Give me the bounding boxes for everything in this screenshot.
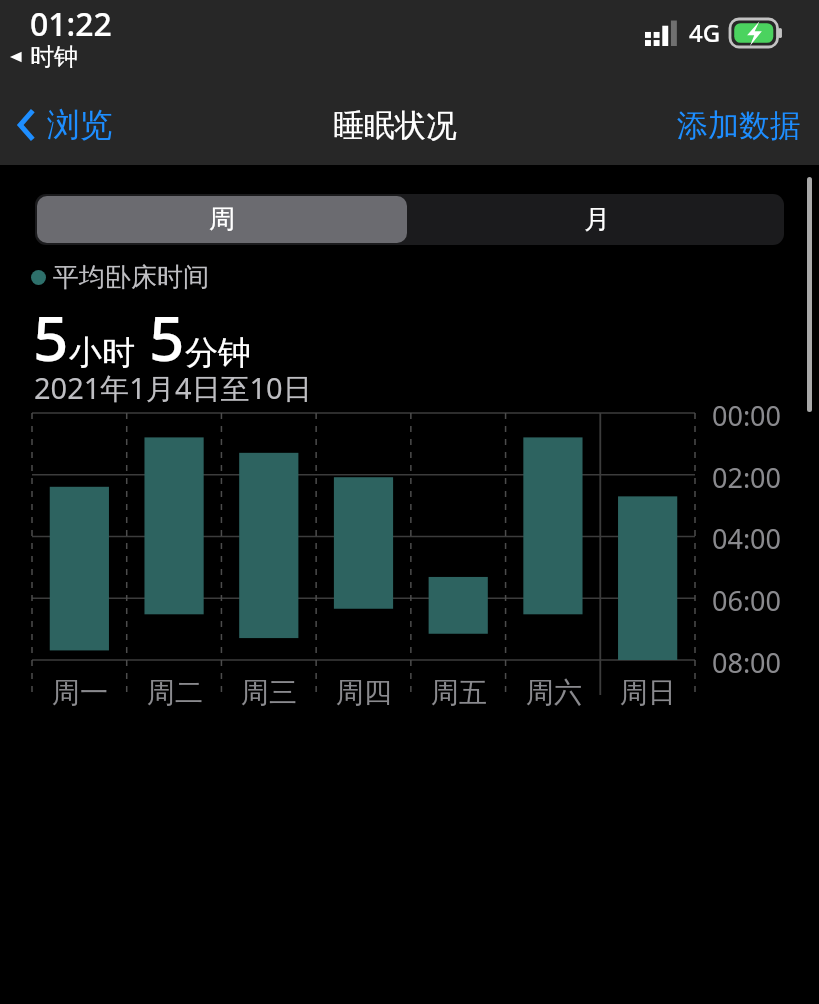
staticText: 周一	[52, 675, 108, 710]
staticText: 00:00	[712, 397, 782, 434]
staticText: 睡眠状况	[333, 106, 457, 145]
button[interactable]: 添加数据	[671, 98, 807, 153]
staticText: 08:00	[712, 644, 782, 681]
button[interactable]: 浏览	[10, 96, 119, 154]
button[interactable]: Back to Clock	[8, 42, 78, 72]
button[interactable]: 月	[409, 194, 784, 245]
staticText: 时钟	[30, 42, 78, 72]
staticText: 周二	[147, 675, 203, 710]
staticText: 周日	[620, 675, 676, 710]
staticText: 周三	[241, 675, 297, 710]
staticText: 平均卧床时间	[53, 261, 209, 294]
staticText: 月	[584, 203, 610, 236]
staticText: 02:00	[712, 459, 782, 496]
staticText: 浏览	[47, 104, 113, 146]
staticText: 添加数据	[677, 106, 801, 145]
staticText: 小时	[69, 332, 135, 374]
staticText: 5	[33, 295, 69, 379]
other: Back to Clock	[8, 47, 24, 67]
staticText: 01:22	[30, 2, 112, 46]
staticText: 04:00	[712, 520, 782, 557]
staticText: 4G	[689, 16, 721, 49]
other: Battery charging	[730, 19, 784, 47]
staticText: 5	[149, 295, 185, 379]
staticText: 周六	[526, 675, 582, 710]
staticText: 分钟	[185, 332, 251, 374]
staticText: 06:00	[712, 582, 782, 619]
staticText: 周	[209, 203, 235, 236]
staticText: 2021年1月4日至10日	[34, 368, 312, 408]
staticText: 周五	[431, 675, 487, 710]
other: Signal strength	[645, 20, 681, 46]
staticText: 周四	[336, 675, 392, 710]
button[interactable]: 周	[37, 196, 407, 243]
